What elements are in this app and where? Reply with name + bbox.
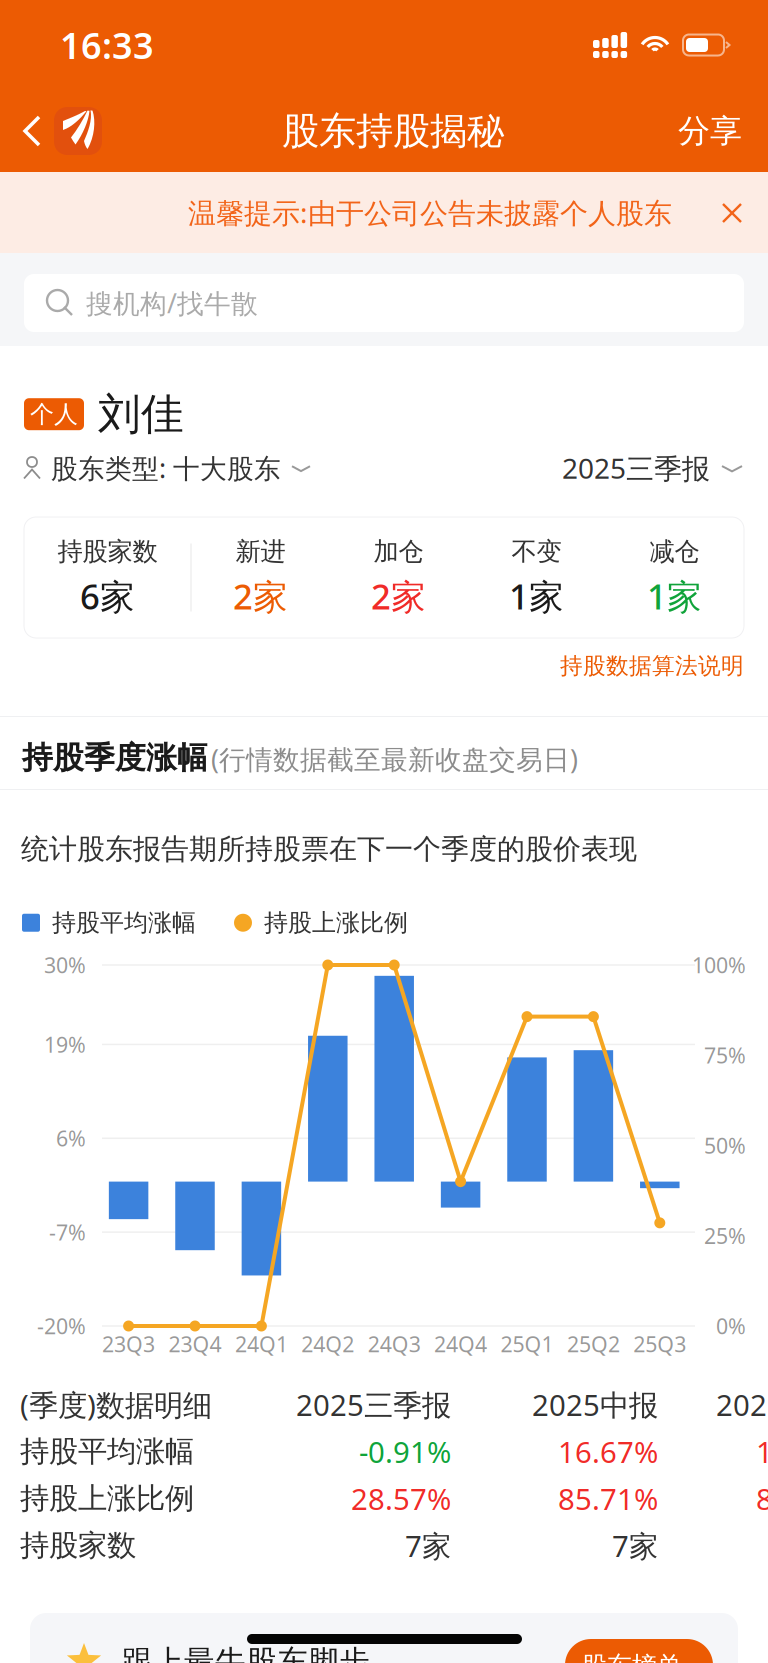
- staticText: 50%: [704, 1131, 746, 1160]
- staticText: 持股平均涨幅: [52, 908, 196, 937]
- staticText: 2025中报: [532, 1385, 658, 1424]
- button[interactable]: 跟上最牛股东脚步: [0, 1613, 708, 1663]
- staticText: 持股家数: [20, 1527, 136, 1563]
- staticText: 股东类型: 十大股东: [51, 450, 281, 486]
- staticText: 0%: [716, 1312, 746, 1340]
- staticText: 温馨提示:由于公司公告未披露个人股东: [188, 194, 672, 231]
- staticText: 1家: [647, 573, 702, 619]
- staticText: 23Q4: [168, 1330, 221, 1358]
- staticText: 75%: [704, 1041, 746, 1069]
- staticText: 8: [756, 1479, 768, 1518]
- staticText: 6家: [80, 573, 135, 619]
- staticText: 股东持股揭秘: [282, 108, 504, 154]
- staticText: 25Q1: [500, 1330, 553, 1358]
- staticText: 不变: [511, 536, 561, 567]
- staticText: 持股上涨比例: [264, 908, 408, 937]
- staticText: 1家: [509, 573, 564, 619]
- staticText: 6%: [56, 1124, 86, 1152]
- staticText: 跟上最牛股东脚步: [122, 1643, 370, 1663]
- button[interactable]: 分享: [678, 90, 768, 172]
- staticText: -0.91%: [359, 1432, 451, 1471]
- staticText: 25%: [704, 1222, 746, 1250]
- staticText: 个人: [30, 399, 78, 429]
- staticText: -20%: [37, 1312, 86, 1340]
- staticText: 16:33: [60, 21, 154, 69]
- staticText: 7家: [612, 1526, 658, 1565]
- staticText: 持股数据算法说明: [560, 652, 744, 680]
- button[interactable]: 2025三季报: [544, 446, 744, 490]
- staticText: 25Q2: [567, 1330, 620, 1358]
- staticText: 24Q3: [368, 1330, 421, 1358]
- staticText: 30%: [44, 951, 86, 979]
- staticText: 28.57%: [351, 1479, 451, 1518]
- staticText: 持股上涨比例: [20, 1480, 194, 1516]
- staticText: 刘佳: [98, 388, 184, 440]
- button[interactable]: 股东类型: 十大股东: [22, 446, 312, 490]
- staticText: 24Q2: [301, 1330, 354, 1358]
- staticText: 新进: [235, 536, 285, 567]
- staticText: 24Q1: [235, 1330, 288, 1358]
- staticText: -7%: [49, 1218, 86, 1246]
- staticText: 2家: [233, 573, 288, 619]
- staticText: 加仓: [373, 536, 423, 567]
- staticText: 分享: [678, 111, 742, 151]
- staticText: 1: [756, 1432, 768, 1471]
- staticText: 2025三季报: [296, 1385, 451, 1424]
- staticText: (行情数据截至最新收盘交易日): [211, 741, 578, 777]
- staticText: 7家: [405, 1526, 451, 1565]
- staticText: 持股家数: [57, 536, 157, 567]
- staticText: 16.67%: [558, 1432, 658, 1471]
- staticText: (季度)数据明细: [20, 1385, 212, 1424]
- button[interactable]: Back: [0, 90, 108, 172]
- staticText: 持股平均涨幅: [20, 1433, 194, 1469]
- staticText: 股东榜单 ›: [581, 1648, 696, 1663]
- staticText: 23Q3: [102, 1330, 155, 1358]
- staticText: 2025三季报: [562, 449, 710, 487]
- staticText: 19%: [44, 1030, 86, 1059]
- button[interactable]: 持股数据算法说明: [524, 642, 744, 690]
- staticText: 持股季度涨幅: [22, 739, 208, 777]
- button[interactable]: 搜机构/找牛散: [24, 274, 744, 332]
- staticText: 85.71%: [558, 1479, 658, 1518]
- staticText: 100%: [692, 951, 746, 979]
- staticText: 统计股东报告期所持股票在下一个季度的股价表现: [21, 832, 637, 866]
- staticText: 2025: [716, 1385, 768, 1424]
- staticText: 减仓: [649, 536, 699, 567]
- staticText: 25Q3: [633, 1330, 686, 1358]
- staticText: 24Q4: [434, 1330, 487, 1358]
- staticText: 搜机构/找牛散: [86, 285, 258, 321]
- staticText: 2家: [371, 573, 426, 619]
- button[interactable]: Close tip: [709, 190, 755, 236]
